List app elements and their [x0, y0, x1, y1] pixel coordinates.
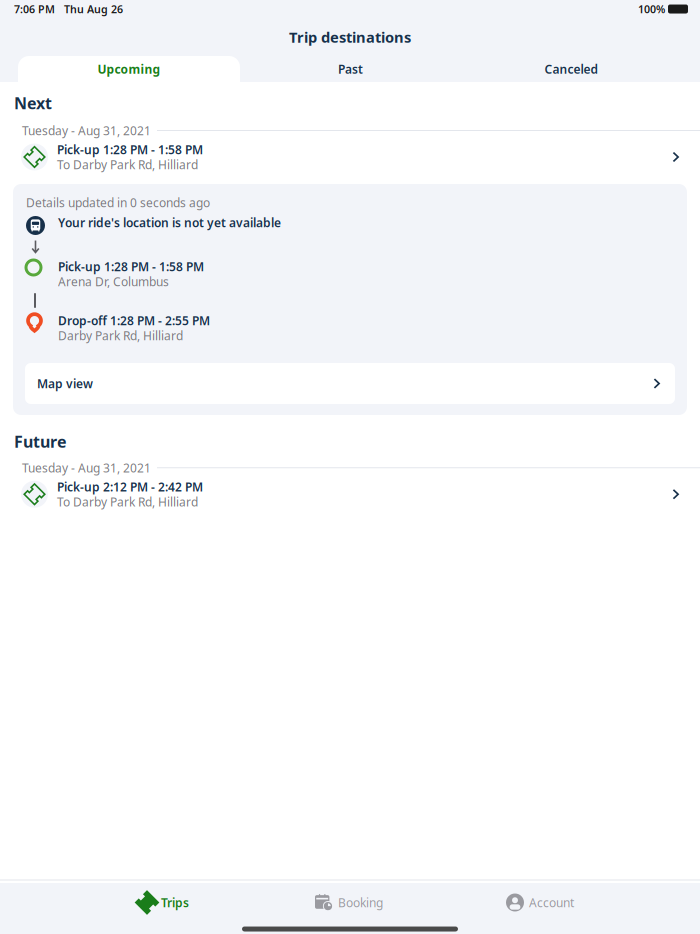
staticText: 7:06 PM	[14, 2, 55, 16]
staticText: Next	[14, 92, 52, 114]
staticText: Past	[338, 61, 363, 77]
staticText: Arena Dr, Columbus	[58, 273, 169, 289]
staticText: Tuesday - Aug 31, 2021	[22, 122, 151, 138]
staticText: Canceled	[544, 61, 598, 77]
staticText: Upcoming	[97, 61, 160, 77]
staticText: Thu Aug 26	[55, 2, 123, 16]
button[interactable]: Booking	[315, 886, 506, 918]
staticText: Pick-up 1:28 PM - 1:58 PM	[58, 258, 204, 274]
button[interactable]: Pick-up 1:28 PM - 1:58 PM	[0, 137, 700, 181]
button[interactable]: Canceled	[461, 56, 682, 82]
staticText: Future	[14, 431, 67, 452]
staticText: Pick-up 1:28 PM - 1:58 PM	[57, 141, 203, 157]
staticText: Details updated in 0 seconds ago	[26, 194, 210, 210]
staticText: Booking	[338, 894, 383, 910]
button[interactable]: Pick-up 2:12 PM - 2:42 PM	[0, 474, 700, 518]
staticText: Map view	[37, 375, 93, 391]
staticText: 100%	[638, 2, 668, 16]
staticText: Pick-up 2:12 PM - 2:42 PM	[57, 479, 203, 495]
button[interactable]: Past	[240, 56, 461, 82]
button[interactable]: Trips	[0, 886, 315, 918]
staticText: To Darby Park Rd, Hilliard	[57, 156, 198, 172]
staticText: Account	[529, 894, 574, 910]
staticText: To Darby Park Rd, Hilliard	[57, 494, 198, 510]
staticText: Trip destinations	[289, 27, 411, 47]
button[interactable]: Account	[506, 886, 700, 918]
staticText: Tuesday - Aug 31, 2021	[22, 460, 151, 476]
staticText: Trips	[161, 894, 189, 910]
button[interactable]: Upcoming	[18, 56, 240, 82]
button[interactable]: Map view	[25, 363, 675, 404]
staticText: Darby Park Rd, Hilliard	[58, 327, 183, 343]
staticText: Drop-off 1:28 PM - 2:55 PM	[58, 312, 210, 328]
staticText: Your ride's location is not yet availabl…	[58, 214, 281, 230]
